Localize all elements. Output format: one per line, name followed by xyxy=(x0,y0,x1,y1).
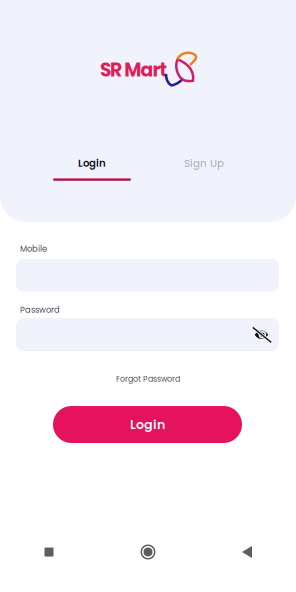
staticText: Forgot Password xyxy=(116,373,180,384)
button[interactable]: Login xyxy=(53,406,242,443)
button[interactable]: Recent apps xyxy=(0,532,98,572)
staticText: Mobile xyxy=(20,243,47,255)
button[interactable]: Login xyxy=(36,157,148,180)
staticText: Sign Up xyxy=(184,156,224,170)
staticText: Password xyxy=(20,304,60,316)
staticText: SR Mart xyxy=(100,57,168,83)
button[interactable]: Sign Up xyxy=(148,157,260,180)
staticText: Login xyxy=(78,156,106,170)
button[interactable]: Forgot Password xyxy=(103,372,193,386)
button[interactable]: Home xyxy=(98,532,198,572)
button[interactable]: Show password xyxy=(252,325,272,343)
staticText: Login xyxy=(130,416,165,433)
button[interactable]: Back xyxy=(198,532,296,572)
